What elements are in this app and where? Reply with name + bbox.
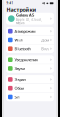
button[interactable]: Galaxy A5 xyxy=(6,13,54,24)
staticText: Уведомления xyxy=(14,57,37,62)
button[interactable]: Уведомления xyxy=(6,55,54,64)
staticText: Wi-Fi xyxy=(14,37,23,43)
button[interactable]: Обои xyxy=(6,84,54,92)
staticText: Настройки xyxy=(6,6,36,13)
button[interactable]: Bluetooth xyxy=(6,44,54,53)
staticText: Экран xyxy=(14,77,25,82)
staticText: Apple ID, iCloud, Медиа xyxy=(16,18,42,25)
staticText: Bluetooth xyxy=(14,46,30,51)
button[interactable]: Wi-Fi xyxy=(6,36,54,44)
staticText: Galaxy A5 xyxy=(16,12,34,18)
staticText: Обои xyxy=(14,85,23,91)
staticText: Siri xyxy=(14,94,20,100)
staticText: Звуки xyxy=(14,66,24,71)
button[interactable]: Звуки xyxy=(6,64,54,73)
button[interactable]: Экран xyxy=(6,75,54,84)
staticText: Авиарежим xyxy=(14,28,35,34)
staticText: Вкл. xyxy=(41,46,49,51)
staticText: Дом xyxy=(41,37,49,43)
staticText: 9:41 xyxy=(6,1,13,5)
button[interactable]: Авиарежим xyxy=(6,27,54,35)
button[interactable]: Siri xyxy=(6,93,54,101)
